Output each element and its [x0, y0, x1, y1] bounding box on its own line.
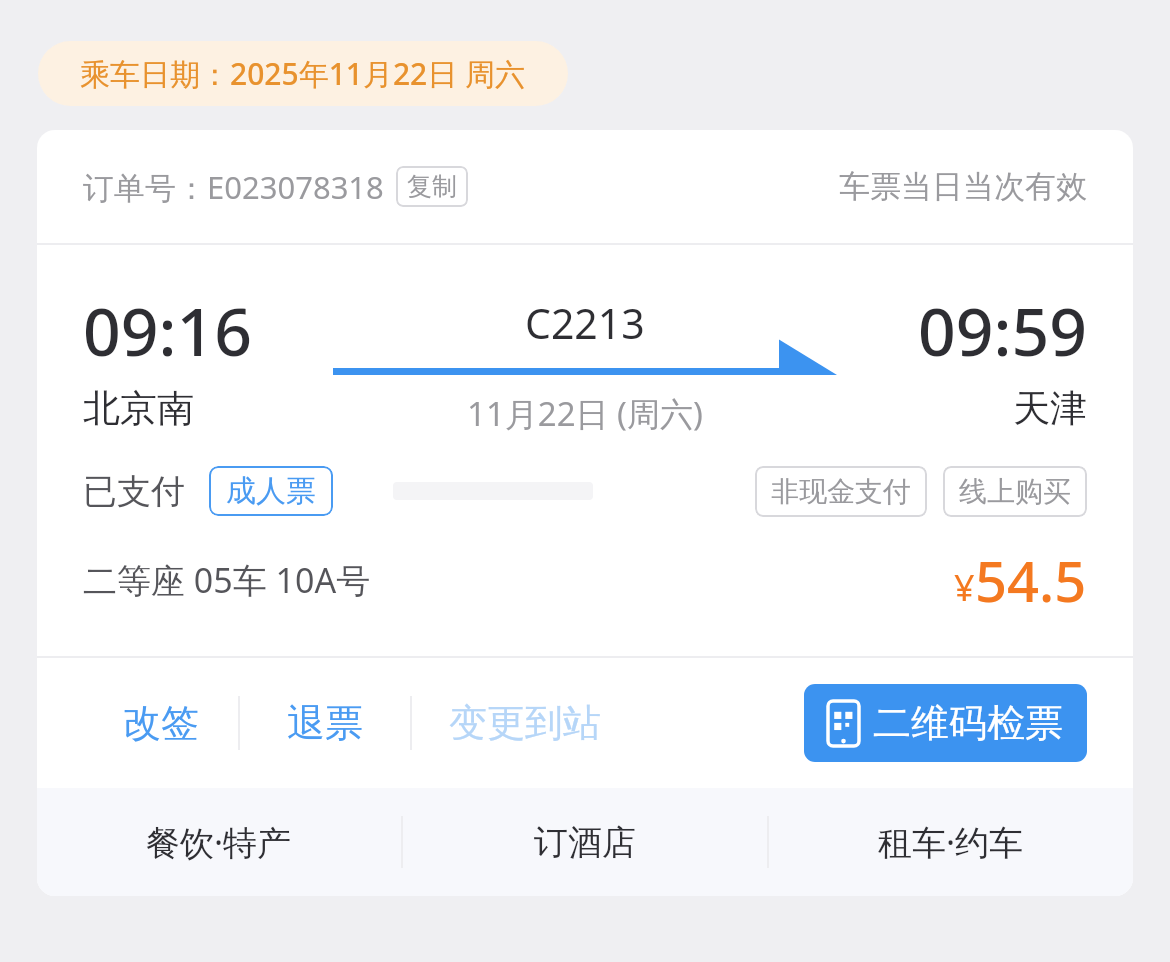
- button[interactable]: 复制: [396, 166, 468, 207]
- staticText: 车票当日当次有效: [839, 167, 1087, 206]
- button[interactable]: 非现金支付: [755, 466, 927, 517]
- button[interactable]: 订酒店: [403, 788, 767, 896]
- staticText: ¥: [954, 563, 975, 612]
- staticText: 订单号：E023078318: [83, 166, 384, 208]
- staticText: 54.5: [975, 542, 1087, 618]
- staticText: 二维码检票: [873, 699, 1063, 747]
- staticText: 已支付: [83, 470, 185, 513]
- button[interactable]: 二维码检票: [804, 684, 1087, 762]
- staticText: 09:59: [918, 285, 1087, 375]
- other: 二维码检票: [828, 701, 859, 746]
- staticText: 租车·约车: [878, 819, 1024, 865]
- staticText: 天津: [1013, 385, 1087, 432]
- button[interactable]: 成人票: [209, 466, 333, 516]
- button[interactable]: 餐饮·特产: [37, 788, 401, 896]
- staticText: 成人票: [226, 472, 316, 510]
- staticText: 09:16: [83, 285, 252, 375]
- button[interactable]: 变更到站: [412, 658, 637, 788]
- staticText: 变更到站: [449, 699, 601, 747]
- button[interactable]: 改签: [83, 658, 238, 788]
- staticText: 改签: [123, 699, 199, 747]
- staticText: 复制: [407, 171, 457, 202]
- staticText: C2213: [525, 295, 645, 351]
- staticText: 二等座 05车 10A号: [83, 557, 371, 603]
- staticText: 退票: [287, 699, 363, 747]
- staticText: 订酒店: [534, 821, 636, 864]
- staticText: 11月22日 (周六): [467, 391, 703, 436]
- staticText: 非现金支付: [771, 474, 911, 509]
- button[interactable]: 退票: [240, 658, 410, 788]
- staticText: 北京南: [83, 385, 194, 432]
- staticText: 餐饮·特产: [146, 819, 292, 865]
- staticText: 乘车日期：2025年11月22日 周六: [80, 53, 526, 94]
- button[interactable]: 乘车日期：2025年11月22日 周六: [38, 41, 568, 106]
- staticText: 线上购买: [959, 474, 1071, 509]
- button[interactable]: 线上购买: [943, 466, 1087, 517]
- button[interactable]: 租车·约车: [769, 788, 1133, 896]
